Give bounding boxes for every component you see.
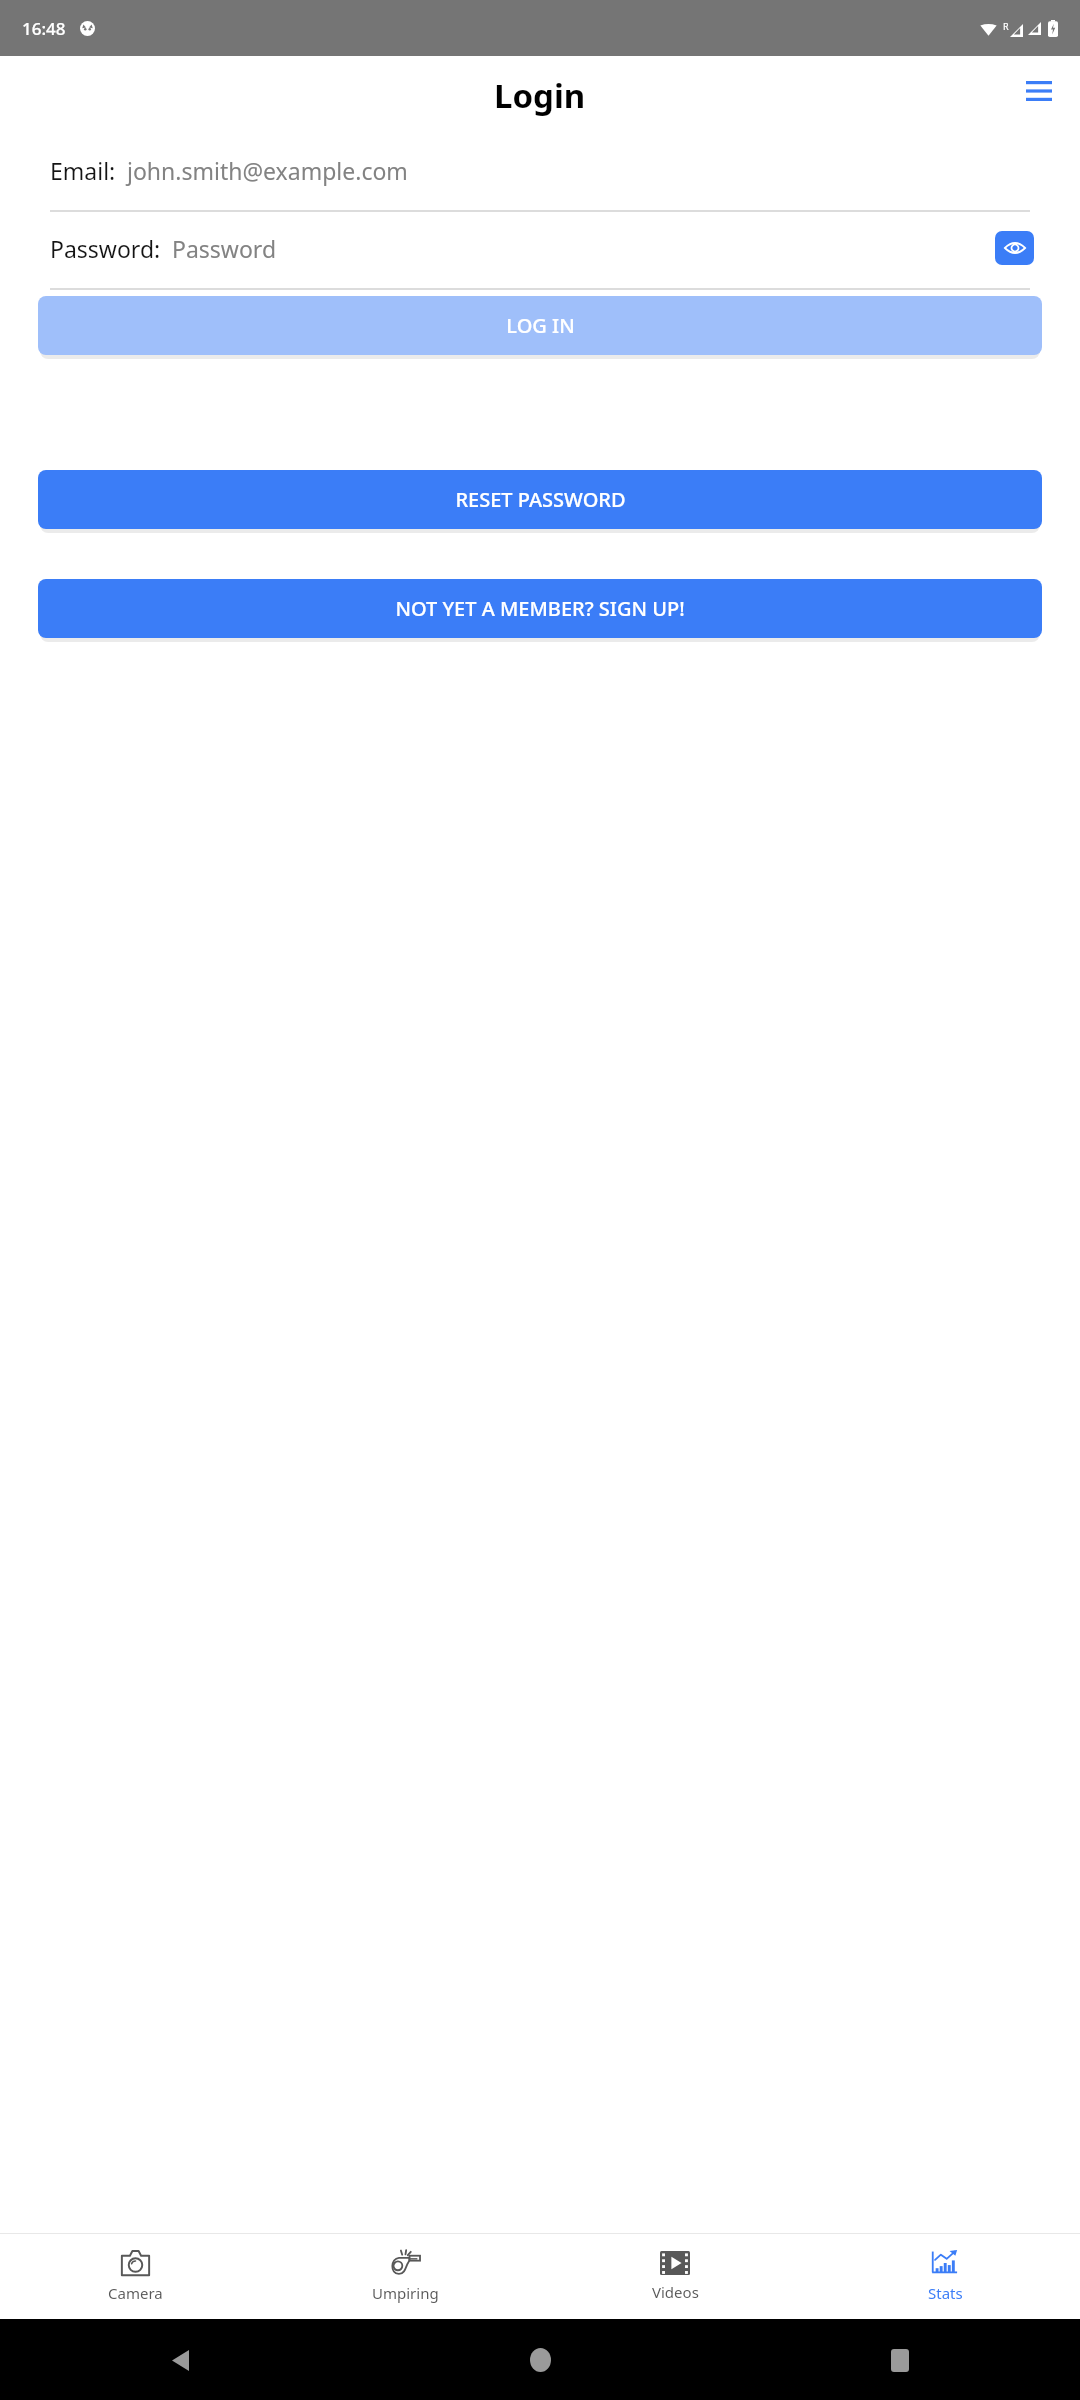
staticText: Password: — [50, 233, 161, 264]
staticText: LOG IN — [506, 312, 575, 339]
staticText: Login — [494, 73, 586, 118]
staticText: john.smith@example.com — [127, 155, 408, 186]
button[interactable]: Umpiring — [270, 2234, 540, 2319]
staticText: R — [1003, 20, 1009, 32]
button[interactable]: Recents — [878, 2338, 922, 2382]
button[interactable]: Show password — [995, 231, 1034, 265]
staticText: 16:48 — [22, 17, 66, 40]
button[interactable]: Stats — [810, 2234, 1080, 2319]
button[interactable]: Menu — [1018, 70, 1060, 112]
staticText: Password — [172, 233, 277, 264]
button[interactable]: LOG IN — [38, 296, 1042, 355]
staticText: Camera — [108, 2283, 163, 2303]
staticText: Umpiring — [372, 2283, 439, 2303]
staticText: Email: — [50, 155, 116, 186]
staticText: NOT YET A MEMBER? SIGN UP! — [395, 595, 685, 622]
button[interactable]: Camera — [0, 2234, 270, 2319]
button[interactable]: RESET PASSWORD — [38, 470, 1042, 529]
button[interactable]: Videos — [540, 2234, 810, 2319]
button[interactable]: Password: — [0, 212, 1080, 284]
staticText: RESET PASSWORD — [455, 486, 626, 513]
staticText: Stats — [928, 2283, 963, 2303]
button[interactable]: Home — [518, 2338, 562, 2382]
button[interactable]: Back — [158, 2338, 202, 2382]
button[interactable]: Email: — [0, 134, 1080, 206]
button[interactable]: NOT YET A MEMBER? SIGN UP! — [38, 579, 1042, 638]
staticText: Videos — [652, 2282, 699, 2302]
